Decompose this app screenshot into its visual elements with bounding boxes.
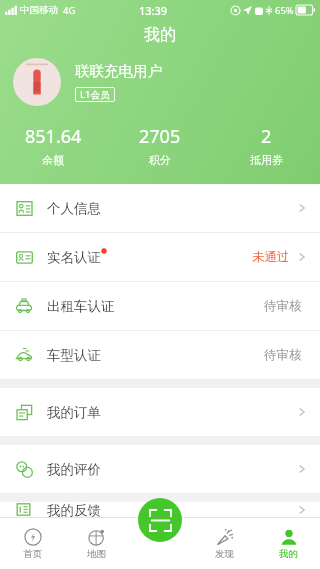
- staticText: 未通过: [252, 249, 290, 265]
- staticText: 我的订单: [47, 404, 101, 421]
- button[interactable]: 2705: [106, 118, 213, 172]
- staticText: 851.64: [25, 124, 82, 149]
- staticText: 抵用券: [250, 153, 283, 167]
- staticText: 待审核: [264, 347, 302, 363]
- staticText: 2: [261, 124, 272, 149]
- staticText: 4G: [63, 4, 76, 17]
- staticText: 2705: [139, 124, 181, 149]
- staticText: 中国移动: [20, 4, 58, 16]
- staticText: 个人信息: [47, 200, 101, 217]
- button[interactable]: 出租车认证: [0, 282, 320, 330]
- staticText: 车型认证: [47, 347, 101, 364]
- staticText: 出租车认证: [47, 298, 115, 315]
- button[interactable]: 我的评价: [0, 445, 320, 493]
- button[interactable]: 我的反馈: [0, 502, 320, 517]
- staticText: 联联充电用户: [75, 62, 162, 80]
- staticText: 我的: [279, 548, 298, 560]
- button[interactable]: 车型认证: [0, 331, 320, 379]
- staticText: 地图: [87, 548, 106, 560]
- button[interactable]: 发现: [192, 517, 256, 569]
- staticText: 余额: [42, 153, 64, 167]
- button[interactable]: 2: [213, 118, 320, 172]
- staticText: 积分: [149, 153, 171, 167]
- staticText: 待审核: [264, 298, 302, 314]
- button[interactable]: 我的订单: [0, 388, 320, 436]
- button[interactable]: 851.64: [0, 118, 106, 172]
- button[interactable]: 首页: [0, 517, 64, 569]
- staticText: 首页: [23, 548, 42, 560]
- staticText: 65%: [275, 4, 294, 17]
- staticText: 我的: [144, 25, 176, 45]
- staticText: 13:39: [139, 3, 168, 18]
- button[interactable]: 个人信息: [0, 184, 320, 232]
- staticText: 我的评价: [47, 461, 101, 478]
- button[interactable]: 地图: [64, 517, 128, 569]
- button[interactable]: 实名认证: [0, 233, 320, 281]
- button[interactable]: 扫一扫: [138, 498, 182, 542]
- staticText: 实名认证: [47, 249, 101, 266]
- button[interactable]: 我的: [256, 517, 320, 569]
- staticText: L1会员: [80, 88, 110, 101]
- staticText: 我的反馈: [47, 502, 101, 517]
- staticText: 发现: [215, 548, 234, 560]
